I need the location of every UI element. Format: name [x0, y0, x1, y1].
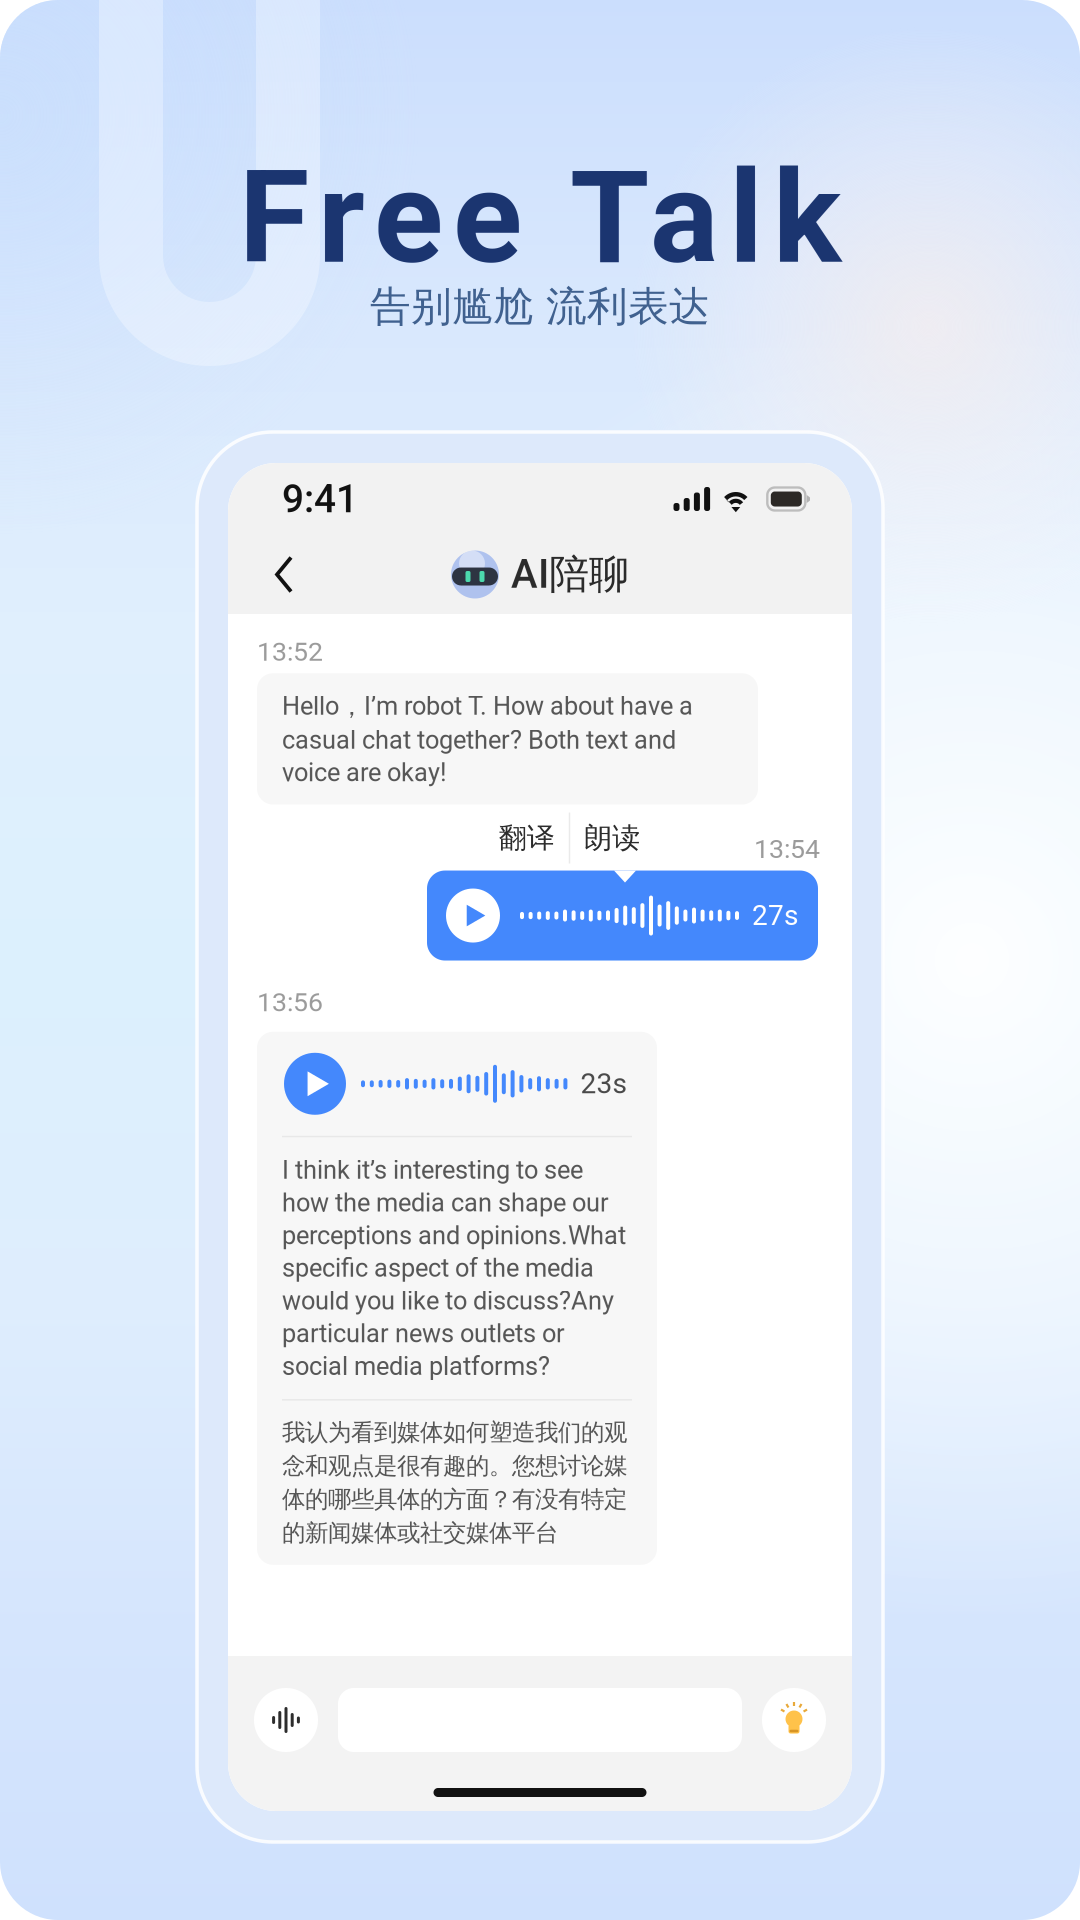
button[interactable]: 翻译	[485, 812, 569, 863]
button[interactable]: 27s	[427, 870, 818, 960]
staticText: 朗读	[584, 820, 640, 856]
button[interactable]: Voice input	[254, 1688, 318, 1752]
staticText: 13:54	[754, 833, 820, 865]
staticText: AI陪聊	[511, 549, 629, 600]
staticText: 27s	[752, 899, 798, 932]
staticText: Free Talk	[239, 143, 841, 293]
staticText: 9:41	[282, 476, 358, 522]
staticText: 13:56	[257, 986, 323, 1018]
staticText: 我认为看到媒体如何塑造我们的观念和观点是很有趣的。您想讨论媒体的哪些具体的方面？…	[282, 1418, 627, 1548]
staticText: 23s	[580, 1067, 626, 1100]
button[interactable]: 朗读	[570, 812, 654, 863]
staticText: 13:52	[257, 636, 323, 667]
staticText: I think it’s interesting to see how the …	[282, 1155, 626, 1381]
staticText: Hello，I’m robot T. How about have a casu…	[282, 690, 693, 788]
button[interactable]: Suggestions	[762, 1688, 826, 1752]
staticText: 告别尴尬 流利表达	[370, 281, 710, 332]
staticText: 翻译	[499, 820, 555, 856]
button[interactable]: Back	[250, 538, 318, 610]
